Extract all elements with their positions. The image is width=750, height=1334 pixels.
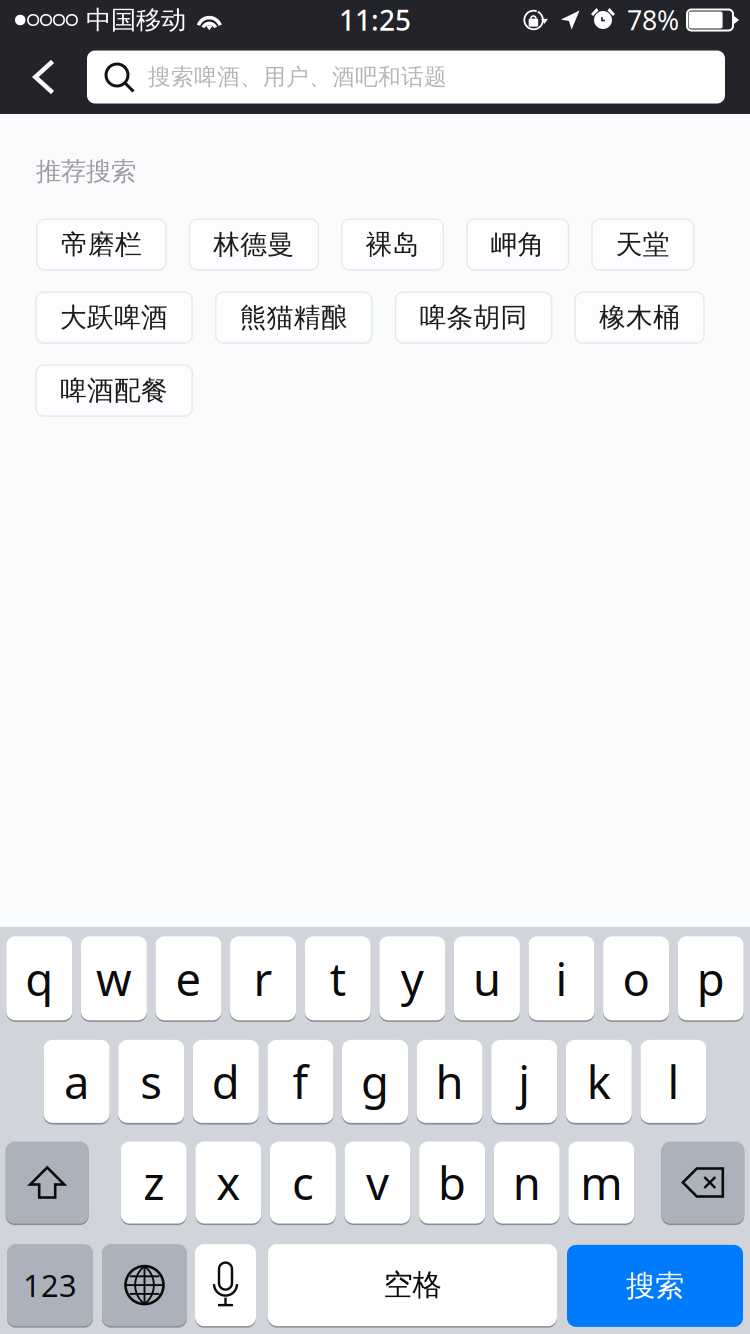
staticText: t (330, 948, 346, 1008)
button[interactable]: x (195, 1141, 261, 1225)
staticText: x (216, 1152, 240, 1213)
staticText: 123 (23, 1265, 77, 1305)
button[interactable]: 帝磨栏 (37, 219, 166, 270)
staticText: p (697, 948, 725, 1008)
staticText: q (25, 948, 53, 1008)
staticText: 啤条胡同 (419, 301, 527, 334)
staticText: y (401, 948, 424, 1008)
button[interactable]: q (6, 936, 72, 1022)
staticText: 大跃啤酒 (60, 301, 168, 334)
button[interactable]: e (155, 936, 221, 1022)
staticText: i (555, 948, 567, 1008)
staticText: b (438, 1152, 466, 1213)
staticText: h (436, 1051, 464, 1111)
button[interactable]: w (81, 936, 147, 1022)
staticText: 11:25 (339, 1, 411, 39)
staticText: m (580, 1152, 622, 1213)
staticText: 搜索啤酒、用户、酒吧和话题 (148, 63, 447, 91)
button[interactable]: z (121, 1141, 187, 1225)
staticText: z (143, 1152, 164, 1213)
button[interactable]: h (417, 1040, 483, 1124)
staticText: e (175, 948, 201, 1008)
staticText: a (64, 1051, 89, 1111)
staticText: 推荐搜索 (36, 156, 136, 187)
staticText: j (518, 1051, 530, 1111)
staticText: c (292, 1152, 314, 1213)
staticText: u (473, 948, 501, 1008)
button[interactable]: Delete (661, 1141, 744, 1225)
button[interactable]: 天堂 (592, 219, 694, 270)
button[interactable]: 啤条胡同 (395, 292, 552, 343)
staticText: 天堂 (616, 228, 670, 261)
button[interactable]: 岬角 (467, 219, 568, 270)
staticText: 中国移动 (86, 4, 186, 35)
button[interactable]: g (342, 1040, 408, 1124)
button[interactable]: 搜索 (567, 1245, 743, 1327)
button[interactable]: 大跃啤酒 (36, 292, 192, 343)
button[interactable]: 裸岛 (342, 219, 443, 270)
button[interactable]: 林德曼 (189, 219, 318, 270)
button[interactable]: 啤酒配餐 (36, 365, 192, 416)
button[interactable]: Back (0, 45, 87, 109)
button[interactable]: c (270, 1141, 336, 1225)
button[interactable]: u (454, 936, 520, 1022)
staticText: n (513, 1152, 541, 1213)
button[interactable]: o (603, 936, 669, 1022)
button[interactable]: y (379, 936, 445, 1022)
button[interactable]: Next keyboard (102, 1244, 187, 1328)
staticText: 搜索 (626, 1268, 684, 1304)
staticText: o (623, 948, 650, 1008)
button[interactable]: s (118, 1040, 184, 1124)
button[interactable]: b (419, 1141, 485, 1225)
staticText: 橡木桶 (599, 301, 680, 334)
button[interactable]: f (267, 1040, 333, 1124)
staticText: r (254, 948, 273, 1008)
staticText: g (361, 1051, 389, 1111)
button[interactable]: j (491, 1040, 557, 1124)
button[interactable]: 熊猫精酿 (216, 292, 372, 343)
staticText: s (140, 1051, 162, 1111)
button[interactable]: p (678, 936, 744, 1022)
button[interactable]: n (494, 1141, 560, 1225)
button[interactable]: k (566, 1040, 632, 1124)
staticText: f (292, 1051, 308, 1111)
staticText: l (667, 1051, 679, 1111)
staticText: 啤酒配餐 (60, 374, 168, 407)
staticText: d (212, 1051, 240, 1111)
button[interactable]: d (193, 1040, 259, 1124)
staticText: 空格 (383, 1267, 441, 1303)
button[interactable]: r (230, 936, 296, 1022)
staticText: 帝磨栏 (61, 228, 142, 261)
staticText: 熊猫精酿 (240, 301, 348, 334)
button[interactable]: Dictation (195, 1244, 256, 1328)
button[interactable]: 123 (7, 1244, 93, 1328)
staticText: 裸岛 (366, 228, 420, 261)
staticText: 78% (627, 2, 679, 38)
button[interactable]: a (44, 1040, 110, 1124)
staticText: 林德曼 (213, 228, 294, 261)
button[interactable]: i (528, 936, 594, 1022)
button[interactable]: m (568, 1141, 634, 1225)
staticText: w (96, 948, 132, 1008)
button[interactable]: v (344, 1141, 410, 1225)
staticText: k (587, 1051, 611, 1111)
button[interactable]: 橡木桶 (575, 292, 704, 343)
button[interactable]: 空格 (268, 1244, 557, 1328)
button[interactable]: Shift (6, 1141, 89, 1225)
staticText: v (366, 1152, 389, 1213)
button[interactable]: t (305, 936, 371, 1022)
button[interactable]: 搜索啤酒、用户、酒吧和话题 (87, 50, 725, 103)
staticText: 岬角 (491, 228, 545, 261)
button[interactable]: l (640, 1040, 706, 1124)
